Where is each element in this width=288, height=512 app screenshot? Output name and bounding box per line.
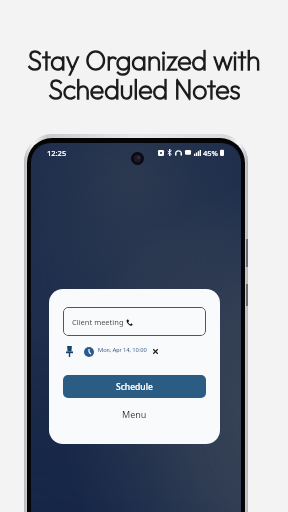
staticText: 12:25 xyxy=(47,148,67,158)
button[interactable]: Client meeting xyxy=(63,307,206,336)
button[interactable]: Menu xyxy=(49,403,220,425)
staticText: Menu xyxy=(122,408,147,420)
staticText: Stay Organized with xyxy=(27,44,261,77)
staticText: Mon, Apr 14, 10:00 xyxy=(98,347,147,354)
button[interactable]: Schedule xyxy=(63,375,206,398)
staticText: Scheduled Notes xyxy=(48,73,241,106)
staticText: Schedule xyxy=(116,381,153,393)
staticText: Client meeting xyxy=(72,317,124,327)
staticText: 45% xyxy=(203,148,218,158)
staticText: Scheduled Notes xyxy=(48,73,241,106)
staticText: Stay Organized with xyxy=(27,44,261,77)
button[interactable]: Remove reminder xyxy=(152,348,159,355)
